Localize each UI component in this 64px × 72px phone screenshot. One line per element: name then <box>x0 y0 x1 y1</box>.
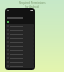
button[interactable] <box>7 56 33 60</box>
button[interactable] <box>7 28 33 32</box>
button[interactable] <box>7 36 33 40</box>
button[interactable] <box>7 52 33 56</box>
button[interactable] <box>7 40 33 44</box>
button[interactable] <box>7 24 33 28</box>
button[interactable] <box>7 60 33 64</box>
button[interactable] <box>7 48 33 52</box>
staticText: for Android <box>25 5 39 9</box>
button[interactable] <box>7 32 33 36</box>
button[interactable] <box>7 13 33 20</box>
button[interactable] <box>7 44 33 48</box>
button[interactable] <box>7 64 33 68</box>
staticText: Required Permissions <box>19 1 46 5</box>
